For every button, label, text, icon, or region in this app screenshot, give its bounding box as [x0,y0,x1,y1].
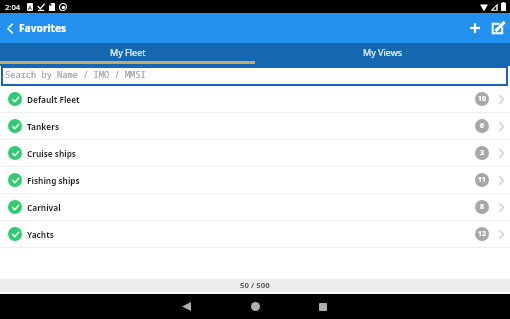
button[interactable]: Home [221,294,289,319]
button[interactable]: Recents [289,294,357,319]
staticText: Cruise ships [27,148,76,159]
staticText: Favorites [19,21,67,35]
staticText: 50 / 500 [240,280,270,291]
button[interactable]: Edit [487,17,509,39]
button[interactable]: Cruise ships [0,140,510,166]
staticText: 12 [478,229,487,239]
button[interactable]: Default Fleet [0,86,510,112]
staticText: Yachts [27,229,54,240]
staticText: 8 [480,202,485,212]
button[interactable]: Add [464,17,486,39]
staticText: Tankers [27,121,60,132]
staticText: 11 [478,175,487,185]
staticText: My Fleet [110,46,146,58]
staticText: My Views [363,46,403,58]
staticText: A [28,4,32,11]
staticText: 10 [478,94,487,104]
staticText: 3 [480,148,485,158]
button[interactable]: Carnival [0,194,510,220]
button[interactable]: My Fleet [0,43,255,61]
staticText: Carnival [27,202,61,213]
button[interactable]: My Views [255,43,510,61]
staticText: Fishing ships [27,175,80,186]
staticText: Search by Name / IMO / MMSI [5,69,146,81]
button[interactable]: Tankers [0,113,510,139]
button[interactable]: Yachts [0,221,510,247]
button[interactable]: Favorites [0,17,75,39]
staticText: 2:04 [5,2,21,12]
button[interactable]: Back [152,294,220,319]
staticText: 6 [480,121,485,131]
button[interactable]: Fishing ships [0,167,510,193]
staticText: Default Fleet [27,94,80,105]
